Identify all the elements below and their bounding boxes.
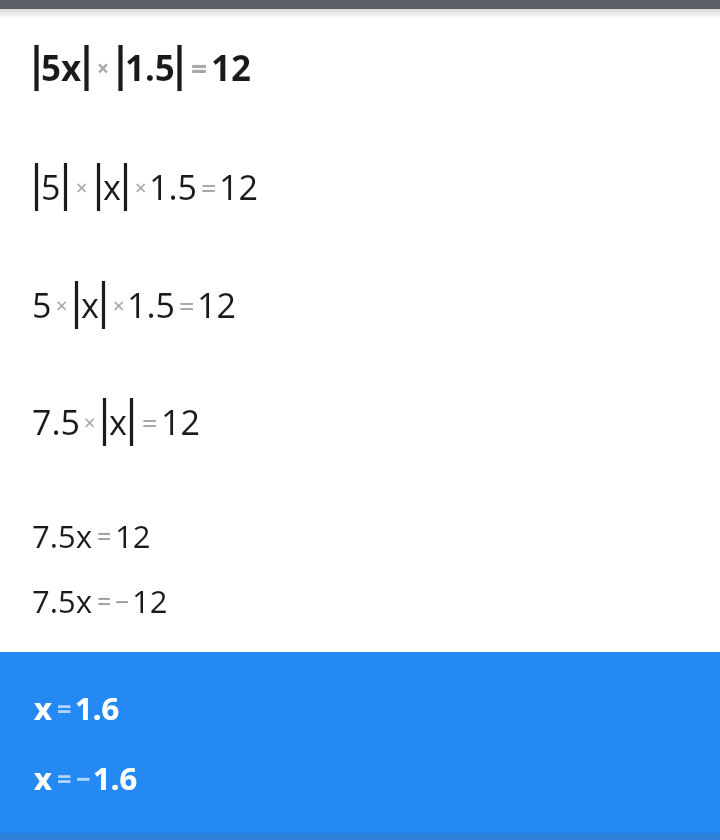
staticText: = [57, 761, 72, 795]
staticText: 7.5 [32, 399, 81, 445]
staticText: 1.6 [93, 757, 138, 799]
staticText: 1.6 [75, 687, 120, 729]
staticText: 5 [41, 164, 61, 210]
staticText: 7.5x [32, 515, 93, 557]
staticText: × [76, 174, 88, 201]
staticText: 1.5 [127, 282, 176, 328]
staticText: = [179, 287, 195, 324]
staticText: = [201, 169, 217, 206]
staticText: x [34, 687, 52, 729]
button[interactable]: Solutions [0, 652, 720, 840]
staticText: 1.5 [149, 164, 198, 210]
staticText: − [115, 584, 130, 618]
staticText: 12 [132, 580, 168, 622]
staticText: − [76, 761, 91, 795]
staticText: = [97, 519, 112, 553]
staticText: x [81, 282, 99, 328]
staticText: = [191, 49, 208, 87]
staticText: × [84, 409, 96, 436]
staticText: = [97, 584, 112, 618]
staticText: × [135, 174, 147, 201]
staticText: × [113, 292, 125, 319]
button[interactable]: 5x [32, 44, 252, 92]
staticText: 5x [41, 44, 82, 92]
staticText: 12 [161, 399, 200, 445]
staticText: × [56, 292, 68, 319]
staticText: x [109, 399, 127, 445]
button[interactable]: 5 [32, 163, 258, 211]
staticText: 12 [211, 44, 252, 92]
staticText: x [103, 164, 121, 210]
staticText: 1.5 [125, 44, 175, 92]
button[interactable]: 5 [32, 281, 236, 329]
button[interactable]: 7.5x [32, 580, 168, 622]
staticText: 12 [115, 515, 151, 557]
staticText: 12 [219, 164, 258, 210]
button[interactable]: 7.5x [32, 515, 151, 557]
staticText: x [34, 757, 52, 799]
staticText: = [57, 691, 72, 725]
button[interactable]: 7.5 [32, 398, 200, 446]
staticText: 7.5x [32, 580, 93, 622]
staticText: 5 [32, 282, 52, 328]
staticText: = [142, 404, 158, 441]
staticText: 12 [197, 282, 236, 328]
staticText: × [97, 54, 110, 83]
